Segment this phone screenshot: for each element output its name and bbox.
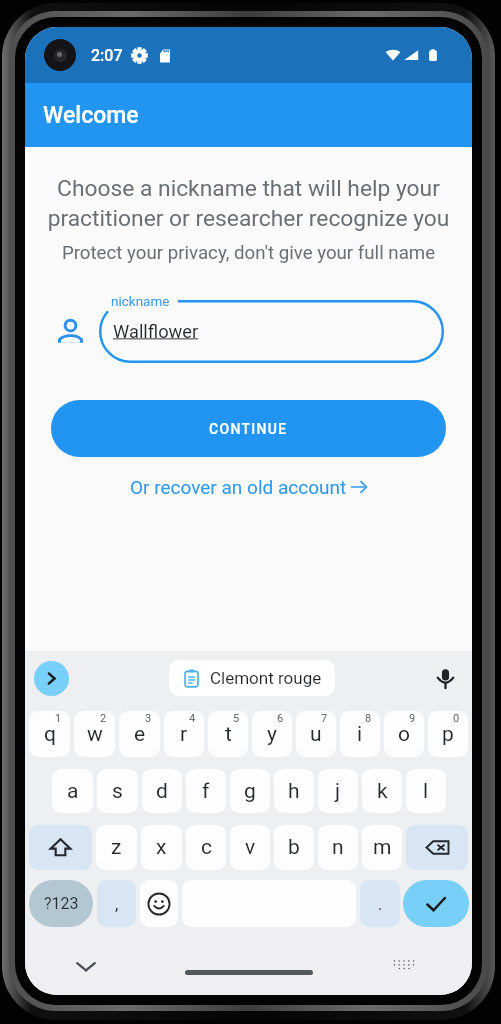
button[interactable]: b [274, 825, 314, 870]
staticText: Protect your privacy, don't give your fu… [37, 242, 460, 264]
staticText: 2:07 [91, 46, 123, 65]
staticText: 6 [277, 712, 284, 725]
button[interactable]: j [318, 769, 358, 813]
staticText: a [67, 779, 79, 804]
staticText: Choose a nickname that will help your pr… [35, 175, 462, 231]
button[interactable]: l [406, 769, 446, 813]
button[interactable]: Shift [29, 825, 92, 870]
staticText: Clemont rouge [210, 668, 322, 688]
button[interactable]: Wallflower [99, 300, 444, 363]
staticText: 1 [55, 712, 62, 725]
staticText: . [378, 894, 383, 914]
staticText: p [442, 722, 454, 747]
button[interactable]: Voice input [430, 663, 460, 693]
button[interactable]: Or recover an old account [25, 468, 472, 506]
staticText: h [288, 779, 300, 804]
staticText: x [156, 835, 167, 860]
staticText: q [44, 722, 56, 747]
button[interactable]: , [97, 880, 136, 927]
staticText: l [423, 779, 429, 804]
button[interactable]: q [29, 711, 70, 757]
staticText: 7 [321, 712, 328, 725]
button[interactable]: r [164, 711, 204, 757]
staticText: nickname [111, 293, 170, 309]
button[interactable]: x [141, 825, 182, 870]
button[interactable]: e [119, 711, 160, 757]
button[interactable]: z [96, 825, 137, 870]
button[interactable]: s [97, 769, 138, 813]
staticText: 3 [145, 712, 152, 725]
staticText: s [112, 779, 123, 804]
button[interactable]: v [230, 825, 270, 870]
staticText: m [373, 835, 392, 860]
button[interactable]: o [384, 711, 424, 757]
staticText: n [332, 835, 344, 860]
staticText: , [115, 894, 119, 914]
staticText: u [310, 722, 322, 747]
button[interactable]: Welcome [25, 83, 472, 147]
staticText: g [244, 779, 256, 804]
button[interactable]: Next suggestions [34, 661, 69, 696]
staticText: 9 [409, 712, 416, 725]
button[interactable]: p [428, 711, 468, 757]
button[interactable]: Clemont rouge [169, 660, 335, 696]
button[interactable]: d [142, 769, 182, 813]
button[interactable]: Emoji [140, 880, 178, 927]
staticText: z [111, 835, 122, 860]
staticText: e [134, 722, 146, 747]
staticText: c [201, 835, 212, 860]
button[interactable]: t [208, 711, 248, 757]
staticText: Or recover an old account [130, 476, 347, 498]
staticText: t [225, 722, 232, 747]
staticText: r [180, 722, 188, 747]
button[interactable]: w [74, 711, 115, 757]
staticText: b [288, 835, 300, 860]
button[interactable]: c [186, 825, 226, 870]
staticText: v [245, 835, 256, 860]
button[interactable]: CONTINUE [51, 400, 446, 457]
staticText: Wallflower [113, 321, 199, 342]
staticText: i [357, 722, 363, 747]
button[interactable]: m [362, 825, 402, 870]
staticText: CONTINUE [209, 421, 288, 437]
staticText: 4 [189, 712, 196, 725]
button[interactable]: y [252, 711, 292, 757]
button[interactable]: h [274, 769, 314, 813]
button[interactable]: i [340, 711, 380, 757]
staticText: 0 [453, 712, 460, 725]
button[interactable]: Symbols [29, 880, 93, 927]
button[interactable]: f [186, 769, 226, 813]
button[interactable]: Switch keyboard [392, 953, 416, 977]
button[interactable]: Hide keyboard [76, 956, 96, 976]
staticText: f [202, 779, 210, 804]
staticText: j [335, 779, 341, 804]
staticText: o [398, 722, 410, 747]
staticText: 8 [365, 712, 372, 725]
button[interactable]: k [362, 769, 402, 813]
button[interactable]: u [296, 711, 336, 757]
staticText: Welcome [43, 102, 139, 129]
staticText: w [87, 722, 103, 747]
staticText: 2 [100, 712, 107, 725]
staticText: 5 [233, 712, 240, 725]
button[interactable]: g [230, 769, 270, 813]
staticText: d [156, 779, 168, 804]
button[interactable]: n [318, 825, 358, 870]
button[interactable]: a [52, 769, 93, 813]
button[interactable]: Backspace [406, 825, 468, 870]
staticText: k [377, 779, 388, 804]
staticText: y [267, 722, 277, 747]
staticText: ?123 [44, 894, 79, 913]
button[interactable]: Enter [403, 880, 469, 927]
button[interactable]: . [360, 880, 400, 927]
